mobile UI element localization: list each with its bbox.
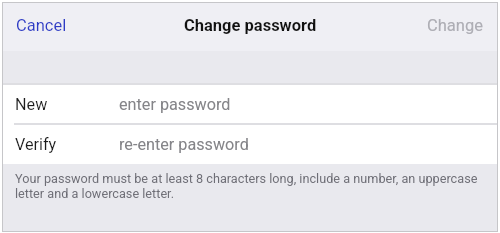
staticText: Your password must be at least 8 charact… [15,172,485,202]
staticText: Verify [15,135,57,154]
button[interactable]: Change [411,4,497,47]
staticText: Change [427,16,483,35]
button[interactable]: Verify [3,125,497,164]
button[interactable]: New [3,85,497,123]
staticText: re-enter password [119,135,249,154]
staticText: Change password [184,16,317,35]
staticText: enter password [119,95,231,114]
staticText: New [15,95,48,114]
staticText: Cancel [16,16,67,35]
button[interactable]: Cancel [3,4,83,47]
